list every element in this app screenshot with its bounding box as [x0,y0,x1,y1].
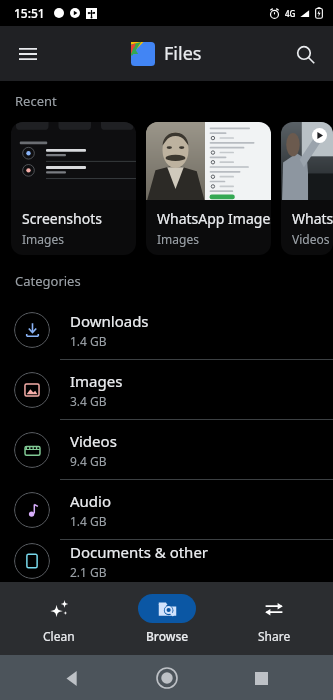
button[interactable]: Open navigation menu [8,34,48,74]
staticText: WhatsApp Images [157,209,271,228]
button[interactable]: Browse [119,594,215,644]
button[interactable]: Clean [11,594,107,644]
staticText: 3.4 GB [70,393,107,409]
staticText: Images [22,231,64,247]
button[interactable]: Downloads [0,300,333,359]
staticText: Images [157,231,199,247]
staticText: Audio [70,491,112,511]
staticText: 9.4 GB [70,453,107,469]
staticText: Clean [43,628,75,644]
staticText: 4G [285,8,296,19]
button[interactable]: Home [145,656,189,700]
staticText: Categories [15,272,81,290]
button[interactable]: WhatsApp Images [146,122,271,255]
button[interactable]: Videos [0,420,333,479]
staticText: Documents & other [70,542,209,562]
staticText: Files [164,41,202,66]
button[interactable]: WhatsApp Videos [281,122,333,255]
button[interactable]: Recent apps [239,656,283,700]
staticText: 1.4 GB [70,333,107,349]
button[interactable]: Back [50,656,94,700]
staticText: 2.1 GB [70,564,107,580]
staticText: WhatsApp Videos [292,209,333,228]
button[interactable]: Screenshots [11,122,136,255]
staticText: Downloads [70,311,149,331]
staticText: 15:51 [14,5,45,21]
staticText: Screenshots [22,209,102,228]
staticText: Videos [292,231,330,247]
button[interactable]: Images [0,360,333,419]
button[interactable]: Audio [0,480,333,539]
staticText: Images [70,371,123,391]
staticText: Browse [146,628,189,644]
staticText: Recent [15,92,57,110]
staticText: Share [258,628,291,644]
staticText: Videos [70,431,117,451]
button[interactable]: Share [226,594,322,644]
button[interactable]: Documents & other [0,540,333,582]
button[interactable]: Search [285,34,325,74]
staticText: 1.4 GB [70,513,107,529]
